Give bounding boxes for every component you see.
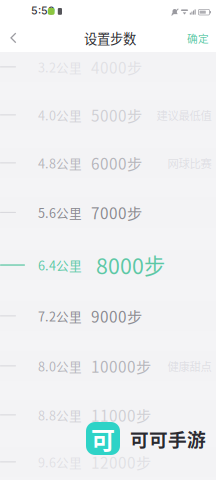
staticText: 8.0公里	[38, 357, 82, 375]
button[interactable]: 9.6公里	[0, 447, 216, 477]
staticText: 3.2公里	[38, 58, 82, 76]
button[interactable]: 4.0公里	[0, 100, 216, 130]
staticText: 6000步	[91, 152, 142, 174]
staticText: 5:59	[31, 4, 55, 17]
staticText: 12000步	[91, 451, 151, 473]
staticText: 设置步数	[84, 28, 136, 48]
staticText: 7000步	[91, 201, 142, 224]
staticText: 9000步	[91, 305, 142, 327]
staticText: 11000步	[91, 404, 151, 426]
button[interactable]: 7.2公里	[0, 301, 216, 331]
button[interactable]: 3.2公里	[0, 52, 216, 82]
button[interactable]: 8.0公里	[0, 351, 216, 381]
button[interactable]: 确定	[178, 24, 216, 52]
staticText: 健康甜点	[167, 358, 211, 374]
button[interactable]: Back	[0, 24, 28, 52]
staticText: 9.6公里	[38, 453, 82, 471]
staticText: 5.6公里	[38, 203, 82, 222]
staticText: 可可手游	[130, 425, 206, 452]
staticText: 6.4公里	[38, 256, 82, 274]
button[interactable]: 5.6公里	[0, 197, 216, 227]
staticText: 4.8公里	[38, 154, 82, 172]
button[interactable]: 6.4公里	[0, 250, 216, 280]
staticText: 7.2公里	[38, 307, 82, 325]
staticText: 4000步	[91, 56, 142, 78]
button[interactable]: 8.8公里	[0, 400, 216, 430]
button[interactable]: 4.8公里	[0, 148, 216, 178]
staticText: 确定	[187, 30, 209, 46]
staticText: 5000步	[91, 104, 142, 126]
staticText: 网球比赛	[167, 155, 211, 171]
staticText: 可	[91, 421, 115, 456]
staticText: 4.0公里	[38, 106, 82, 124]
staticText: 8.8公里	[38, 406, 82, 424]
staticText: 8000步	[96, 250, 165, 280]
staticText: 建议最低值	[156, 107, 211, 123]
staticText: 10000步	[91, 355, 151, 377]
